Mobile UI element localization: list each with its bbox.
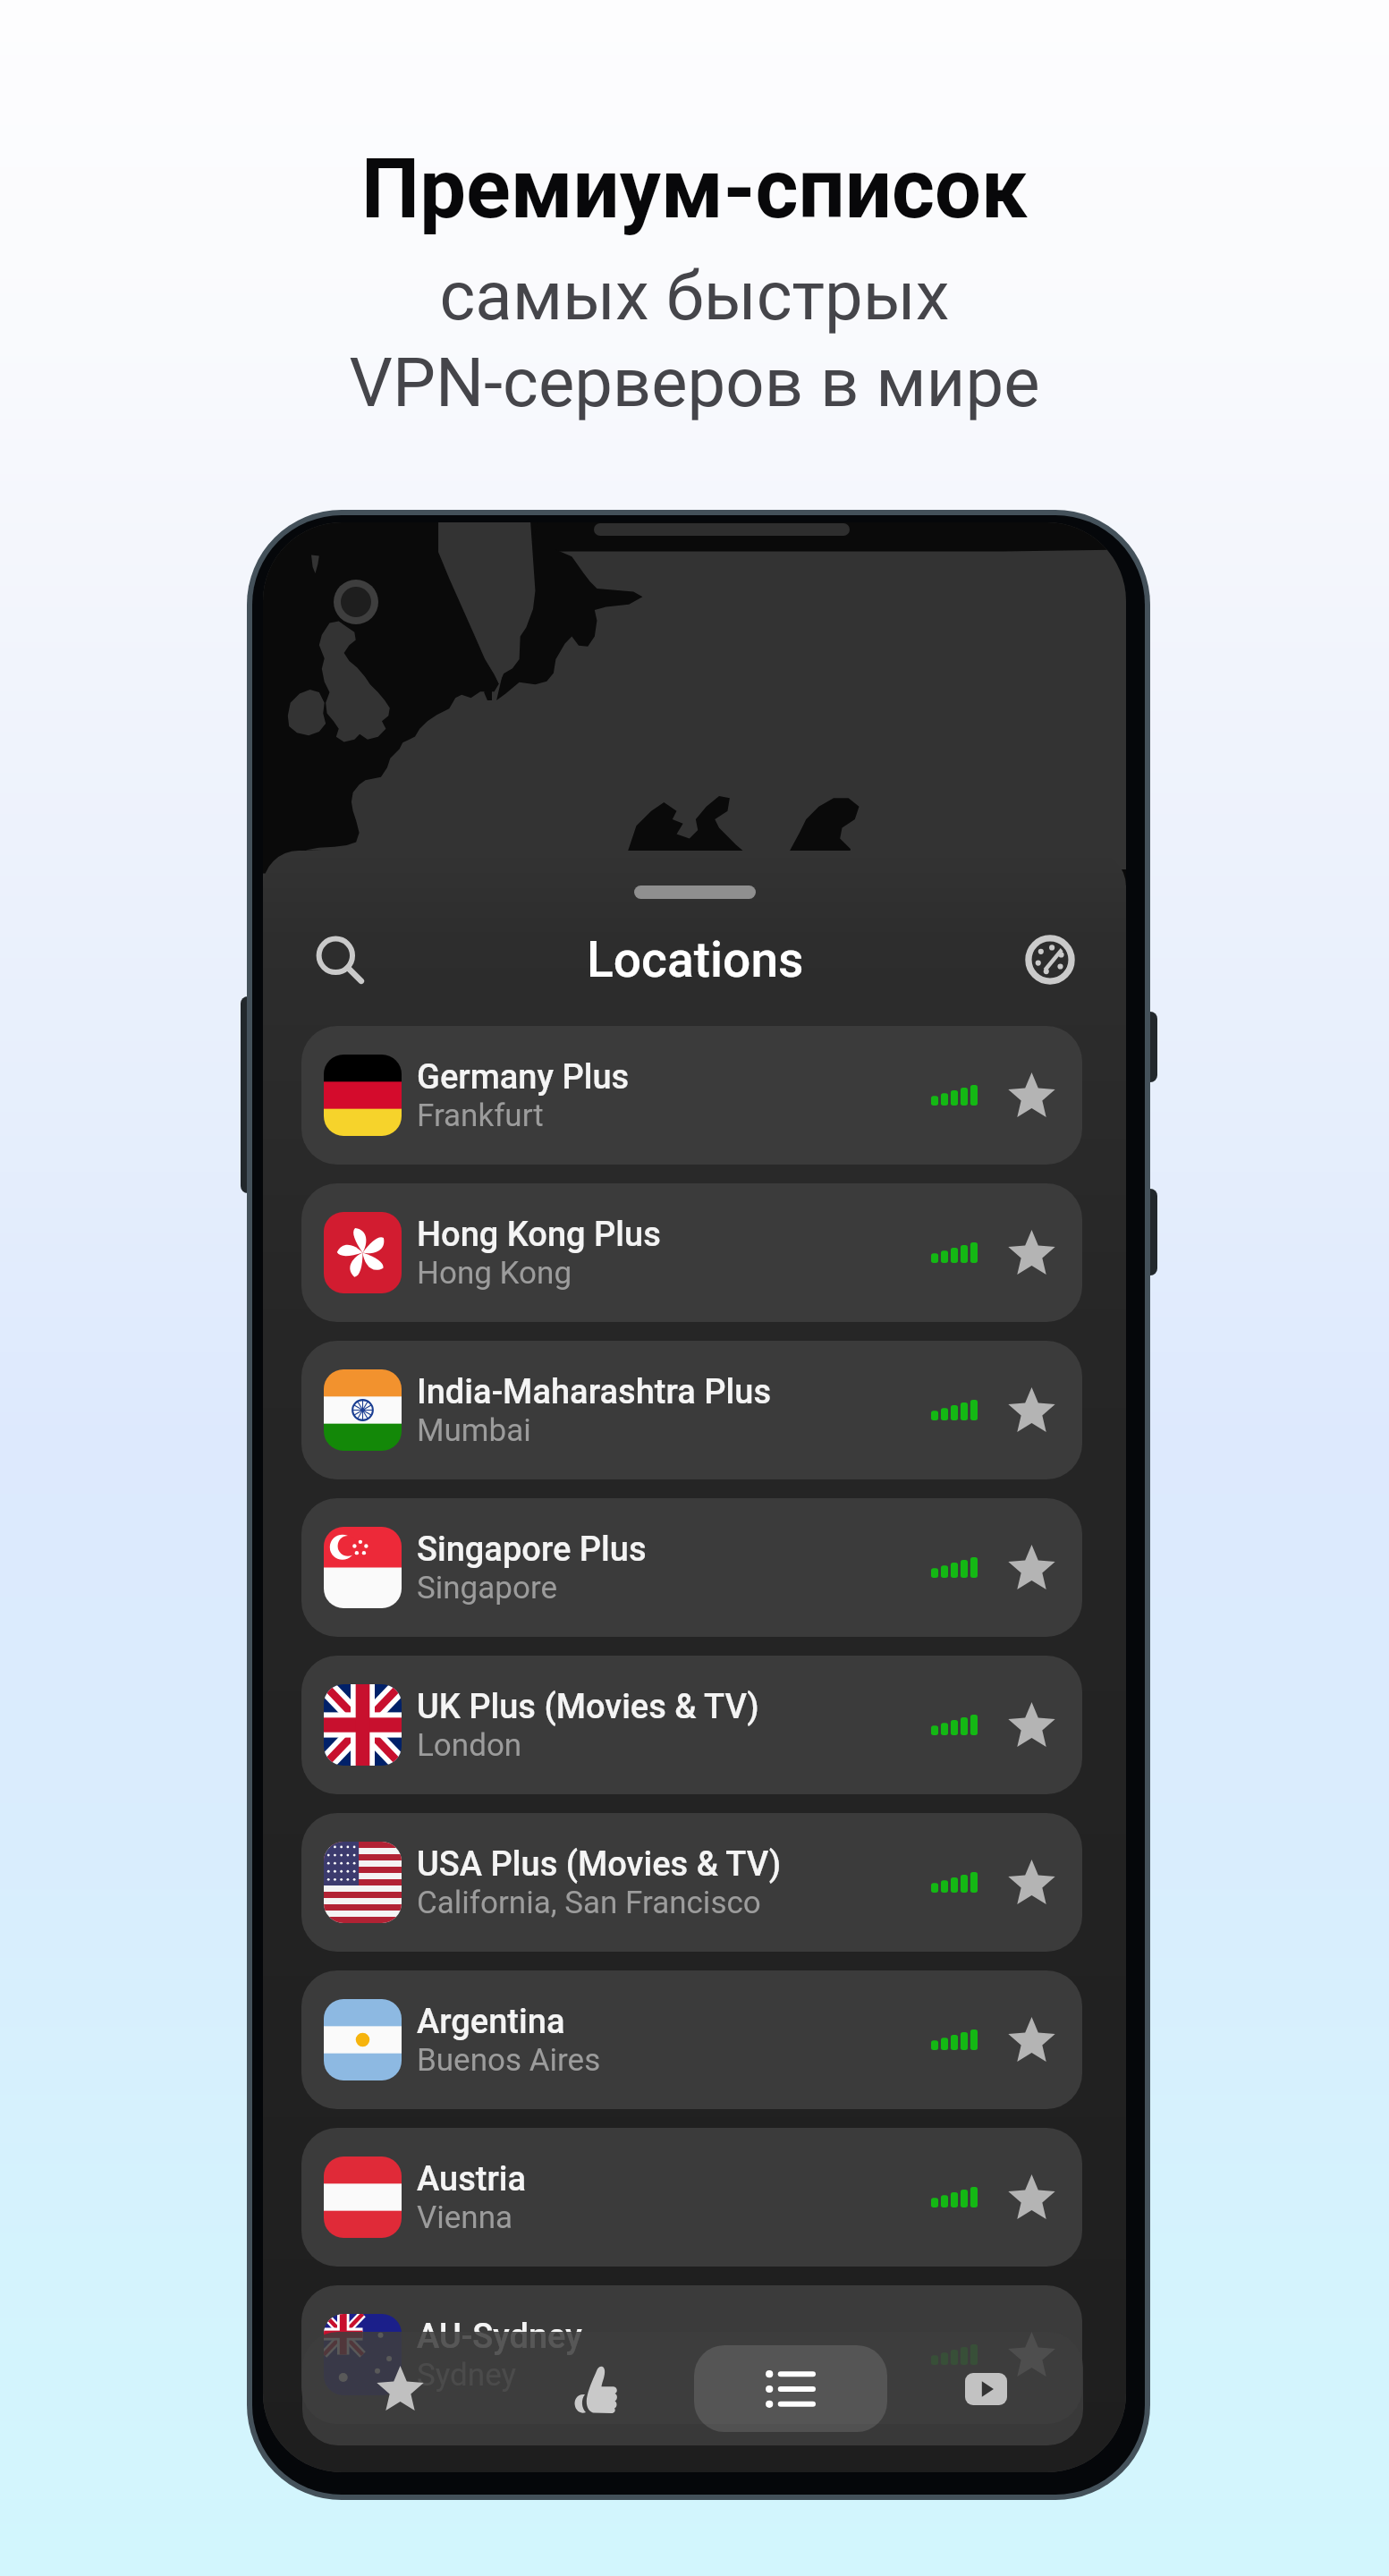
button[interactable]: Video (888, 2332, 1083, 2445)
button[interactable]: Argentina (301, 1970, 1082, 2109)
button[interactable]: Singapore Plus (301, 1498, 1082, 1637)
button[interactable]: Austria (301, 2128, 1082, 2267)
staticText: Germany Plus (417, 1057, 630, 1097)
staticText: USA Plus (Movies & TV) (417, 1844, 782, 1885)
button[interactable]: Search (263, 911, 417, 1008)
button[interactable]: India-Maharashtra Plus (301, 1341, 1082, 1479)
staticText: Frankfurt (417, 1097, 544, 1134)
staticText: Премиум-список (0, 141, 1389, 238)
staticText: Singapore (417, 1570, 558, 1606)
button[interactable]: UK Plus (Movies & TV) (301, 1656, 1082, 1794)
staticText: Austria (417, 2159, 527, 2199)
staticText: AU-Sydney (417, 2317, 582, 2357)
staticText: California, San Francisco (417, 1885, 761, 1921)
button[interactable]: Recommended (498, 2332, 693, 2445)
staticText: Buenos Aires (417, 2042, 601, 2079)
staticText: Mumbai (417, 1412, 531, 1449)
button[interactable]: Speed test (974, 911, 1126, 1008)
staticText: London (417, 1727, 522, 1764)
staticText: Sydney (417, 2357, 517, 2394)
staticText: Locations (587, 931, 804, 988)
button[interactable]: USA Plus (Movies & TV) (301, 1813, 1082, 1952)
staticText: Singapore Plus (417, 1529, 647, 1570)
staticText: UK Plus (Movies & TV) (417, 1687, 759, 1727)
staticText: Argentina (417, 2002, 565, 2042)
button[interactable]: Germany Plus (301, 1026, 1082, 1165)
button[interactable]: Hong Kong Plus (301, 1183, 1082, 1322)
button[interactable]: AU-Sydney (301, 2285, 1082, 2424)
button[interactable]: Favorites (302, 2332, 498, 2445)
staticText: Hong Kong (417, 1255, 572, 1292)
staticText: Vienna (417, 2199, 513, 2236)
staticText: самых быстрых VPN-серверов в мире (0, 256, 1389, 422)
button[interactable]: All locations (694, 2345, 887, 2432)
staticText: India-Maharashtra Plus (417, 1372, 772, 1412)
staticText: Hong Kong Plus (417, 1215, 661, 1255)
